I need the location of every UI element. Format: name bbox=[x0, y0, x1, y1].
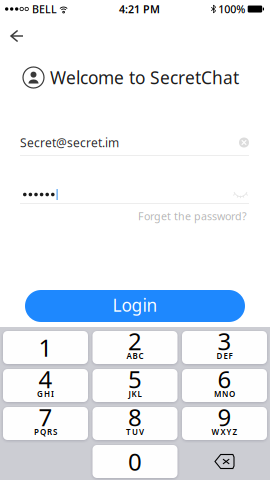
staticText: 9 bbox=[217, 401, 231, 433]
button[interactable]: 6 bbox=[182, 369, 267, 402]
staticText: A B C bbox=[126, 351, 143, 361]
staticText: 100% bbox=[218, 2, 245, 16]
staticText: M N O bbox=[214, 389, 235, 399]
button[interactable]: Forget the password? bbox=[138, 205, 270, 227]
staticText: 4:21 PM bbox=[119, 2, 160, 16]
staticText: Welcome to SecretChat bbox=[50, 66, 239, 89]
staticText: 7 bbox=[38, 401, 52, 433]
button[interactable]: Back bbox=[0, 23, 37, 49]
button[interactable]: 1 bbox=[3, 331, 88, 364]
button[interactable]: 7 bbox=[3, 407, 88, 440]
staticText: Login bbox=[112, 293, 157, 316]
staticText: G H I bbox=[37, 389, 54, 399]
button[interactable]: 2 bbox=[92, 331, 177, 364]
staticText: D E F bbox=[216, 351, 232, 361]
staticText: 2 bbox=[128, 325, 142, 357]
staticText: 3 bbox=[217, 325, 231, 357]
staticText: 8 bbox=[128, 401, 142, 433]
button[interactable]: Clear text bbox=[233, 137, 249, 147]
button[interactable]: 3 bbox=[182, 331, 267, 364]
button[interactable]: 5 bbox=[92, 369, 177, 402]
staticText: T U V bbox=[126, 427, 144, 437]
staticText: 5 bbox=[128, 363, 142, 395]
button[interactable]: 4 bbox=[3, 369, 88, 402]
staticText: 0 bbox=[128, 446, 142, 477]
staticText: 4 bbox=[38, 363, 52, 395]
staticText: 6 bbox=[217, 363, 231, 395]
staticText: P Q R S bbox=[34, 427, 57, 437]
button[interactable]: Show password bbox=[232, 187, 249, 202]
staticText: Forget the password? bbox=[138, 209, 247, 223]
staticText: BELL bbox=[32, 2, 57, 16]
staticText: Secret@secret.im bbox=[20, 134, 119, 150]
button[interactable]: 0 bbox=[92, 445, 177, 478]
button[interactable]: 9 bbox=[182, 407, 267, 440]
button[interactable]: 8 bbox=[92, 407, 177, 440]
staticText: W X Y Z bbox=[211, 427, 237, 437]
button[interactable]: Delete bbox=[182, 445, 267, 478]
staticText: J K L bbox=[128, 389, 141, 399]
button[interactable]: Login bbox=[25, 290, 245, 322]
staticText: 1 bbox=[38, 332, 52, 363]
